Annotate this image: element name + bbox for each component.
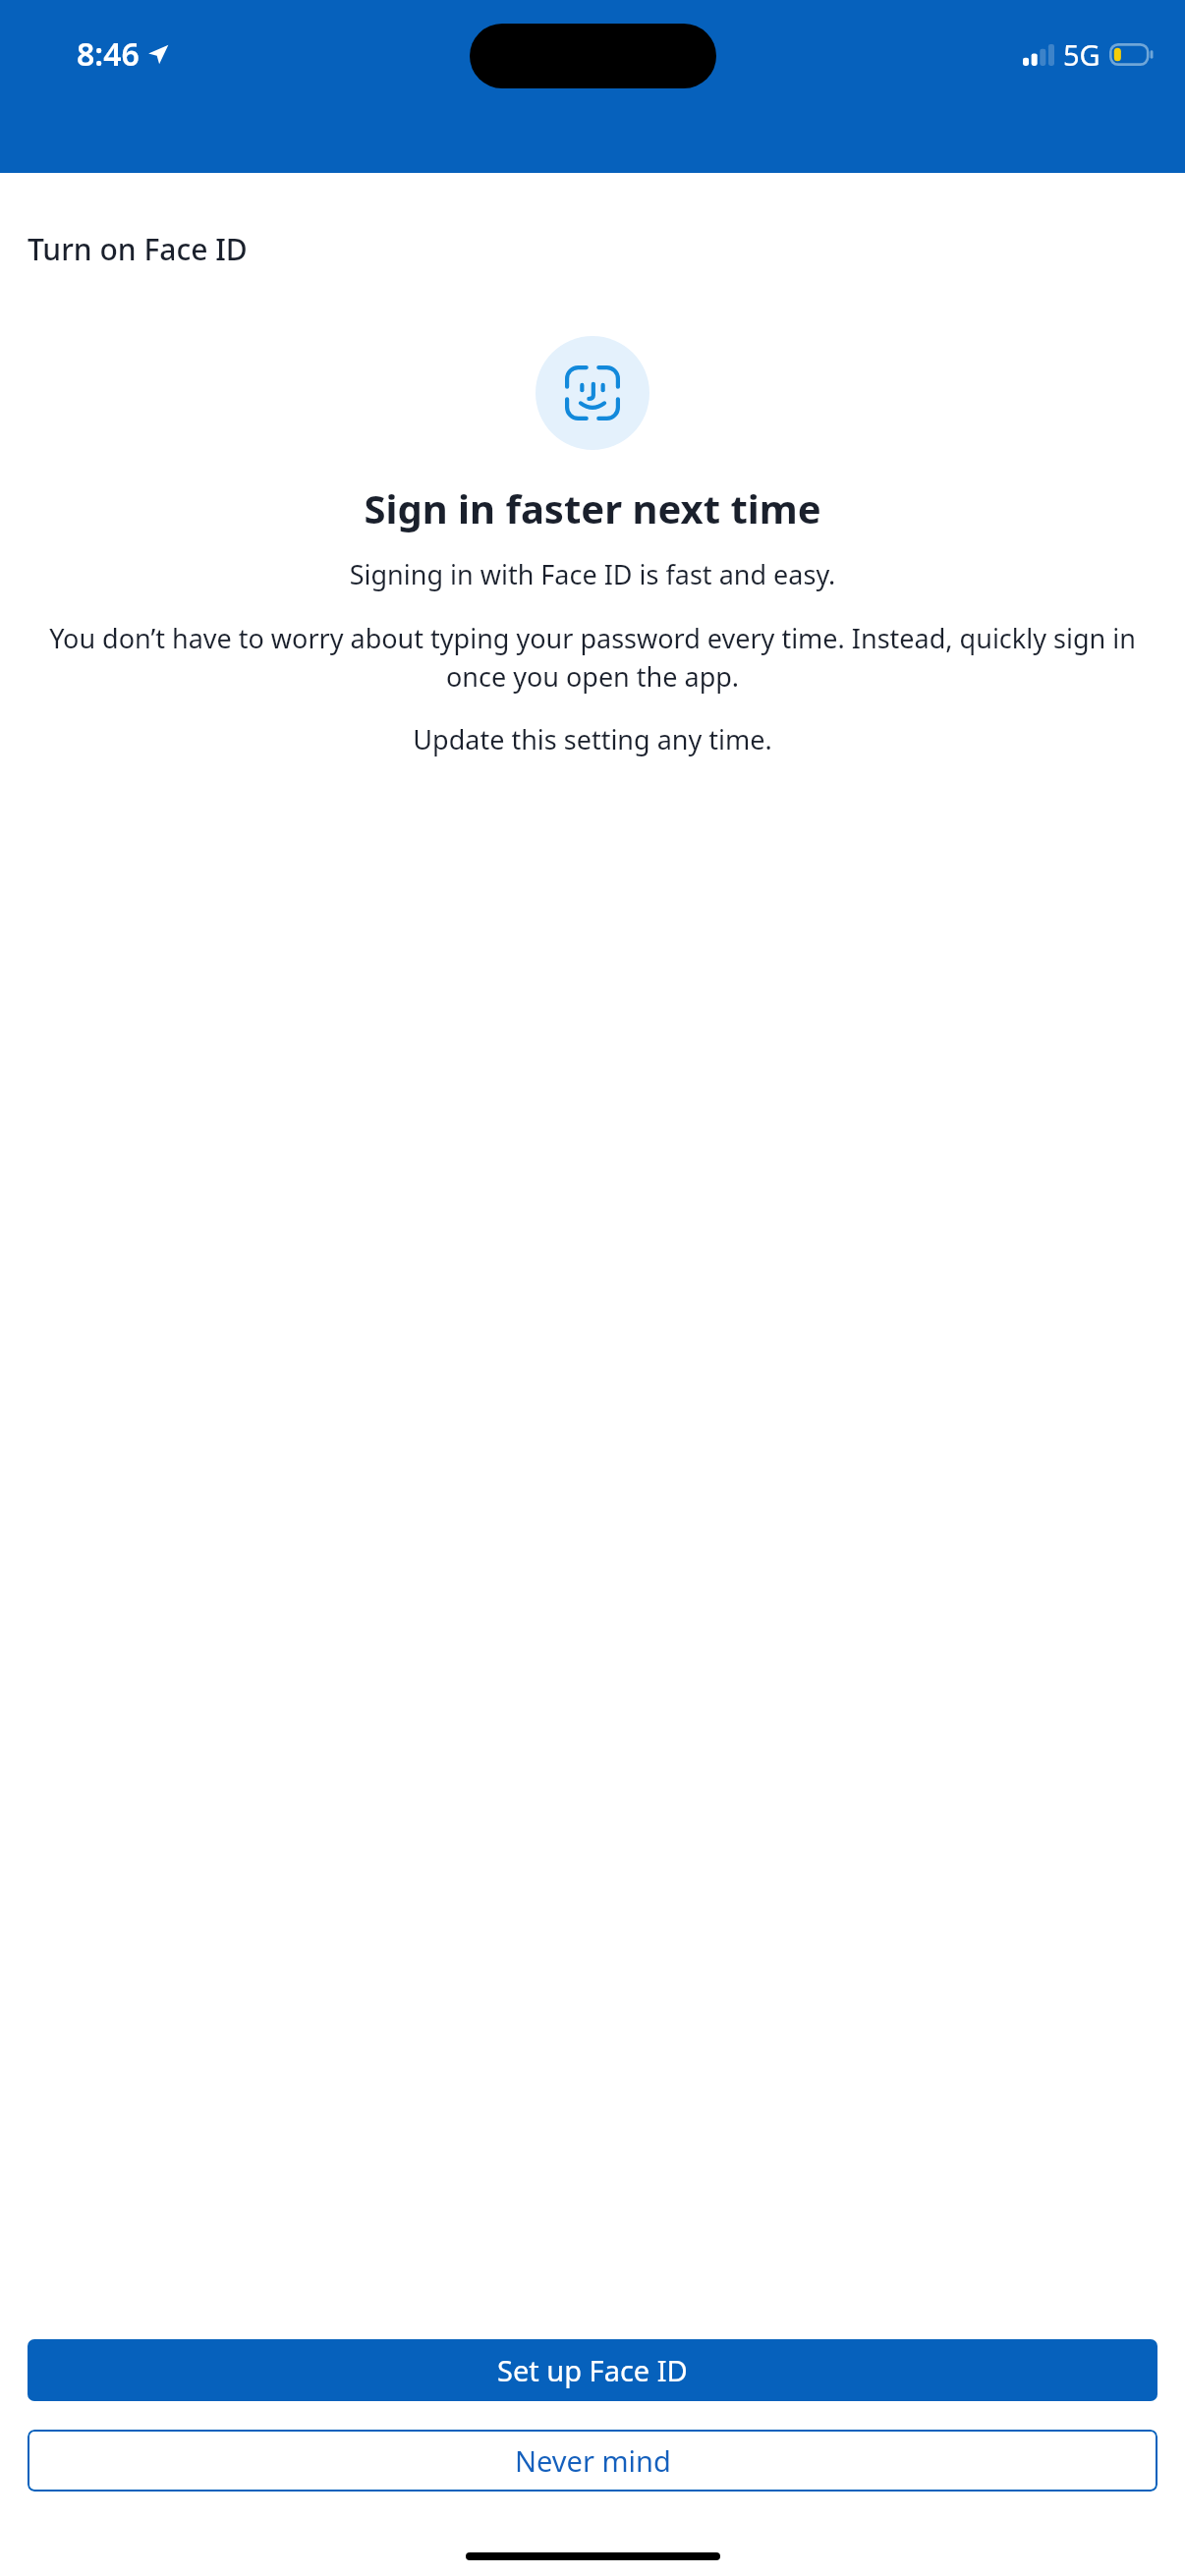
staticText: You don’t have to worry about typing you…	[31, 620, 1154, 695]
button[interactable]: Never mind	[28, 2430, 1157, 2492]
staticText: Turn on Face ID	[28, 229, 248, 269]
staticText: Set up Face ID	[497, 2351, 688, 2389]
staticText: Signing in with Face ID is fast and easy…	[28, 556, 1157, 592]
staticText: 5G	[1063, 35, 1100, 74]
staticText: Update this setting any time.	[28, 721, 1157, 757]
staticText: 8:46	[77, 32, 140, 76]
other: Face ID	[565, 365, 620, 420]
staticText: Sign in faster next time	[20, 481, 1165, 534]
button[interactable]: Set up Face ID	[28, 2339, 1157, 2401]
staticText: Never mind	[515, 2441, 671, 2480]
